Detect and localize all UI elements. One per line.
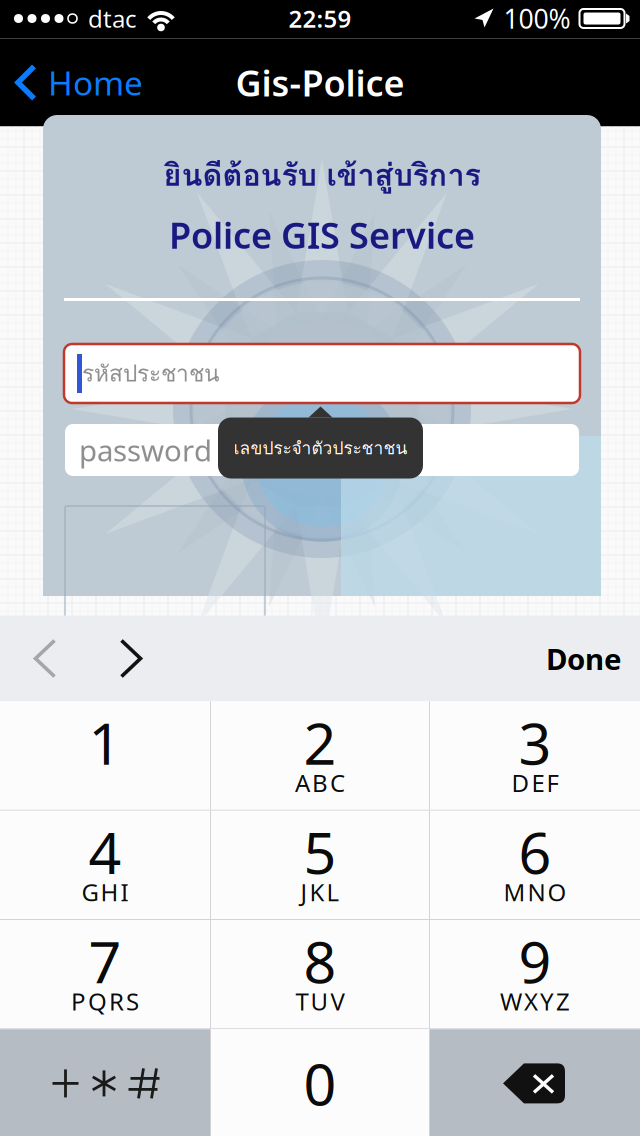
button[interactable]: 6 bbox=[430, 811, 640, 919]
staticText: Home bbox=[48, 60, 143, 105]
staticText: Gis-Police bbox=[235, 59, 404, 106]
staticText: GHI bbox=[81, 876, 128, 908]
staticText: Done bbox=[546, 639, 622, 678]
staticText: 4 bbox=[88, 814, 121, 890]
staticText: 6 bbox=[518, 814, 551, 890]
staticText: 1 bbox=[88, 705, 121, 781]
staticText: 5 bbox=[303, 814, 336, 890]
staticText: 100% bbox=[503, 1, 570, 36]
button[interactable]: 7 bbox=[0, 920, 210, 1028]
button[interactable]: Symbols bbox=[0, 1029, 210, 1136]
button[interactable]: 5 bbox=[211, 811, 429, 919]
staticText: JKL bbox=[300, 876, 339, 908]
button[interactable]: Home bbox=[0, 38, 155, 126]
button[interactable]: Next field bbox=[88, 615, 174, 701]
staticText: รหัสประชาชน bbox=[82, 356, 219, 391]
staticText: 8 bbox=[303, 923, 336, 999]
staticText: ABC bbox=[295, 767, 345, 799]
staticText: 3 bbox=[518, 705, 551, 781]
staticText: 22:59 bbox=[288, 3, 351, 34]
button[interactable]: 4 bbox=[0, 811, 210, 919]
staticText: 2 bbox=[303, 705, 336, 781]
button[interactable]: 2 bbox=[211, 701, 429, 810]
staticText: DEF bbox=[511, 767, 558, 799]
staticText: MNO bbox=[503, 876, 566, 908]
button[interactable]: 9 bbox=[430, 920, 640, 1028]
staticText: 7 bbox=[88, 923, 121, 999]
button[interactable]: 1 bbox=[0, 701, 210, 810]
staticText: ยินดีต้อนรับ เข้าสู่บริการ bbox=[163, 151, 480, 198]
staticText: เลขประจำตัวประชาชน bbox=[233, 435, 407, 461]
button[interactable]: 8 bbox=[211, 920, 429, 1028]
staticText: TUV bbox=[295, 985, 344, 1017]
button[interactable]: Delete bbox=[430, 1029, 640, 1136]
staticText: password bbox=[79, 430, 212, 469]
button[interactable]: 0 bbox=[211, 1029, 429, 1136]
button[interactable]: 3 bbox=[430, 701, 640, 810]
staticText: Police GIS Service bbox=[169, 211, 475, 259]
button[interactable]: Previous field bbox=[2, 615, 88, 701]
staticText: 9 bbox=[518, 923, 551, 999]
staticText: dtac bbox=[88, 3, 137, 34]
staticText: WXYZ bbox=[500, 985, 570, 1017]
button[interactable]: Done bbox=[528, 615, 640, 701]
staticText: 0 bbox=[303, 1045, 336, 1121]
staticText: PQRS bbox=[71, 985, 139, 1017]
